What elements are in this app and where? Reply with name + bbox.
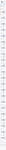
button[interactable]: Passwords [1,49,5,55]
button[interactable]: Wallet [1,43,5,49]
button[interactable]: Mail [1,55,5,61]
button[interactable]: Weather [1,127,5,133]
button[interactable]: Apps [3,143,4,148]
staticText: FaceTime [3,86,4,100]
staticText: Passwords [3,43,4,59]
staticText: Contacts [3,56,4,70]
staticText: Sounds [3,16,4,26]
staticText: Weather [3,123,4,135]
button[interactable]: Photos [1,103,5,109]
staticText: Notes [3,70,4,79]
staticText: Wallet [3,40,4,49]
button[interactable]: FaceTime [1,91,5,97]
button[interactable]: Safari [1,97,5,103]
staticText: Privacy [3,33,4,45]
staticText: Safari [3,94,4,104]
button[interactable]: Search [4,143,6,148]
button[interactable]: Focus [1,25,5,31]
staticText: Messages [3,80,4,94]
button[interactable]: Screen Time [1,31,5,37]
button[interactable]: Notes [1,73,5,79]
button[interactable]: Books [1,115,5,121]
button[interactable]: Sounds [1,19,5,25]
button[interactable]: Camera [1,109,5,115]
button[interactable]: Reminders [1,79,5,85]
staticText: Health [3,118,4,127]
staticText: Books [3,112,4,121]
button[interactable]: Today [0,143,1,148]
button[interactable]: Contacts [1,61,5,67]
staticText: Focus [3,22,4,31]
staticText: Display [3,9,4,21]
staticText: Calendar [3,62,4,76]
staticText: Mail [3,54,4,60]
button[interactable]: Messages [1,85,5,91]
button[interactable]: Display [1,13,5,19]
staticText: Maps [3,131,4,138]
button[interactable]: Profile [4,3,5,5]
button[interactable]: Privacy [1,37,5,43]
button[interactable]: Maps [1,133,5,139]
staticText: 9:41 [0,0,3,2]
staticText: Shortcuts [3,133,4,149]
staticText: Settings [0,0,3,15]
button[interactable]: Calendar [1,67,5,73]
button[interactable]: Health [1,121,5,127]
button[interactable]: Games [1,143,3,148]
staticText: General [3,3,4,15]
staticText: Camera [3,106,4,116]
staticText: Screen Time [3,23,4,43]
button[interactable]: General [1,7,5,13]
button[interactable]: Shortcuts [1,139,5,144]
staticText: Reminders [3,73,4,89]
staticText: Photos [3,100,4,110]
